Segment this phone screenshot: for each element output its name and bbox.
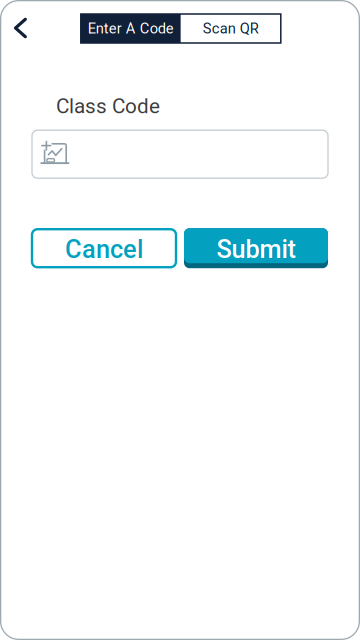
staticText: Cancel (65, 235, 143, 264)
button[interactable]: Submit (184, 228, 328, 268)
button[interactable]: Enter A Code (81, 14, 181, 43)
staticText: Class Code (56, 94, 160, 118)
staticText: Scan QR (203, 20, 259, 37)
button[interactable]: Back (0, 7, 41, 49)
button[interactable]: Cancel (32, 229, 176, 267)
staticText: Enter A Code (88, 20, 174, 37)
staticText: Submit (216, 235, 295, 264)
button[interactable]: Scan QR (181, 14, 281, 43)
